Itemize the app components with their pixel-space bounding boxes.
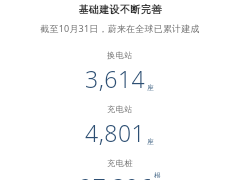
staticText: 充电站: [107, 104, 133, 114]
staticText: 截至10月31日，蔚来在全球已累计建成: [40, 22, 200, 34]
staticText: 3,614: [85, 63, 146, 94]
staticText: 座: [147, 83, 154, 92]
button[interactable]: 充电站: [10, 104, 229, 148]
staticText: 基础建设不断完善: [78, 3, 162, 16]
staticText: 换电站: [107, 50, 133, 60]
staticText: 座: [147, 137, 154, 146]
staticText: 根: [154, 171, 161, 178]
button[interactable]: 换电站: [10, 50, 229, 94]
staticText: 充电桩: [107, 158, 133, 168]
button[interactable]: 充电桩: [10, 158, 229, 180]
staticText: 27,396: [79, 171, 153, 180]
staticText: 4,801: [85, 117, 146, 148]
